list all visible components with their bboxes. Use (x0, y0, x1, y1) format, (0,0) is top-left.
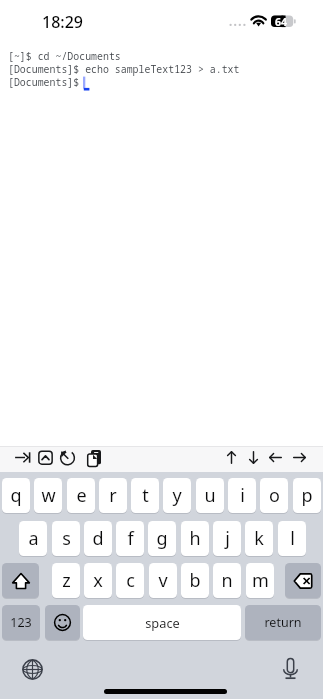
button[interactable]: return (245, 605, 321, 640)
button[interactable]: i (228, 478, 256, 513)
button[interactable]: z (52, 563, 80, 598)
button[interactable]: r (99, 478, 127, 513)
button[interactable]: Emoji (45, 605, 80, 640)
staticText: 64 (275, 15, 288, 29)
staticText: c (126, 568, 135, 593)
button[interactable]: Tab (11, 446, 33, 468)
staticText: j (225, 526, 230, 551)
staticText: f (127, 526, 134, 551)
staticText: e (76, 483, 87, 508)
button[interactable]: c (116, 563, 144, 598)
staticText: k (254, 526, 264, 551)
button[interactable]: t (131, 478, 159, 513)
staticText: s (62, 526, 71, 551)
button[interactable]: e (67, 478, 95, 513)
staticText: o (269, 483, 280, 508)
button[interactable]: Arrow up (220, 446, 242, 468)
button[interactable]: d (84, 521, 112, 556)
staticText: g (156, 526, 168, 551)
staticText: t (142, 483, 149, 508)
button[interactable]: History (56, 446, 78, 468)
staticText: return (264, 614, 302, 631)
button[interactable]: v (149, 563, 177, 598)
button[interactable]: p (293, 478, 321, 513)
button[interactable]: Shift (2, 563, 39, 598)
button[interactable]: h (181, 521, 209, 556)
button[interactable]: n (213, 563, 241, 598)
button[interactable]: Control (34, 446, 56, 468)
staticText: [Documents]$ (8, 75, 86, 88)
button[interactable]: o (260, 478, 288, 513)
button[interactable]: Dictate (280, 658, 301, 679)
staticText: v (158, 568, 168, 593)
staticText: a (28, 526, 39, 551)
staticText: [~]$ cd ~/Documents (8, 49, 121, 62)
button[interactable]: Arrow right (288, 446, 310, 468)
button[interactable]: Paste (82, 446, 104, 468)
staticText: l (290, 526, 295, 551)
staticText: [Documents]$ echo sampleText123 > a.txt (8, 62, 240, 75)
button[interactable]: m (246, 563, 274, 598)
button[interactable]: j (213, 521, 241, 556)
button[interactable]: w (34, 478, 62, 513)
staticText: q (10, 483, 22, 508)
staticText: h (189, 526, 201, 551)
staticText: b (189, 568, 201, 593)
button[interactable]: y (163, 478, 191, 513)
staticText: m (252, 568, 269, 593)
button[interactable]: Backspace (285, 563, 321, 598)
staticText: d (92, 526, 104, 551)
staticText: y (172, 483, 182, 508)
staticText: r (109, 483, 117, 508)
button[interactable]: a (19, 521, 47, 556)
button[interactable]: l (278, 521, 306, 556)
button[interactable]: Arrow left (264, 446, 286, 468)
button[interactable]: k (245, 521, 273, 556)
button[interactable]: x (84, 563, 112, 598)
button[interactable]: g (148, 521, 176, 556)
button[interactable]: space (83, 605, 241, 640)
button[interactable]: u (196, 478, 224, 513)
button[interactable]: 123 (2, 605, 40, 640)
staticText: i (240, 483, 245, 508)
staticText: 123 (10, 614, 32, 631)
staticText: 18:29 (42, 11, 83, 33)
button[interactable]: Switch keyboard (21, 658, 43, 680)
button[interactable]: s (52, 521, 80, 556)
button[interactable]: f (116, 521, 144, 556)
staticText: w (41, 483, 56, 508)
staticText: p (301, 483, 313, 508)
button[interactable]: Arrow down (242, 446, 264, 468)
staticText: u (204, 483, 216, 508)
staticText: space (145, 614, 180, 631)
staticText: z (62, 568, 71, 593)
staticText: x (93, 568, 103, 593)
button[interactable]: b (181, 563, 209, 598)
button[interactable]: q (2, 478, 30, 513)
staticText: n (221, 568, 233, 593)
